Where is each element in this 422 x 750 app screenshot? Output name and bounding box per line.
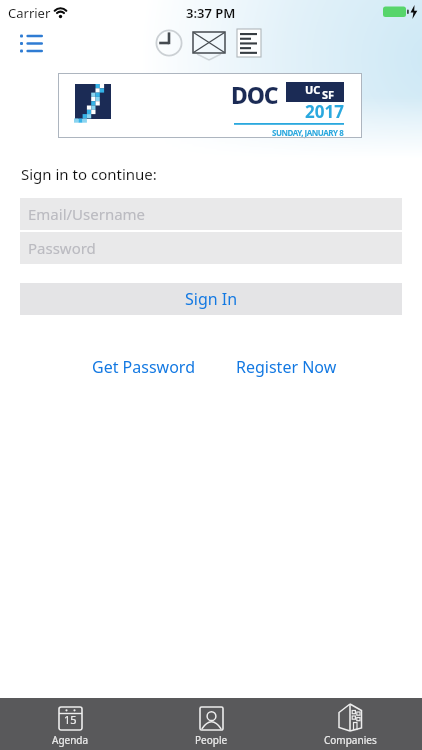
button[interactable] — [153, 28, 185, 60]
button[interactable]: DOC — [58, 73, 362, 138]
button[interactable]: Companies — [310, 698, 390, 750]
button[interactable] — [233, 26, 267, 62]
staticText: Password — [28, 238, 96, 258]
staticText: Companies — [324, 733, 377, 747]
staticText: SF — [322, 87, 335, 102]
staticText: 15 — [64, 712, 77, 727]
staticText: Carrier — [8, 4, 51, 22]
button[interactable] — [14, 28, 50, 58]
staticText: 2017 — [305, 100, 344, 123]
button[interactable]: 15 — [30, 698, 110, 750]
staticText: Sign in to continue: — [21, 164, 157, 184]
button[interactable]: Email/Username — [20, 198, 402, 230]
button[interactable] — [189, 28, 229, 62]
staticText: Register Now — [236, 356, 337, 378]
button[interactable]: Register Now — [232, 352, 341, 382]
button[interactable]: Password — [20, 232, 402, 264]
staticText: 3:37 PM — [186, 4, 236, 22]
button[interactable]: Get Password — [88, 352, 199, 382]
staticText: Sign In — [185, 288, 238, 310]
staticText: UC — [305, 82, 321, 97]
staticText: Email/Username — [28, 204, 146, 224]
staticText: SUNDAY, JANUARY 8 — [272, 127, 344, 138]
staticText: DOC — [231, 79, 278, 110]
staticText: Get Password — [92, 356, 195, 378]
button[interactable]: People — [171, 698, 251, 750]
staticText: Agenda — [52, 733, 89, 747]
button[interactable]: Sign In — [20, 283, 402, 315]
staticText: People — [195, 733, 228, 747]
